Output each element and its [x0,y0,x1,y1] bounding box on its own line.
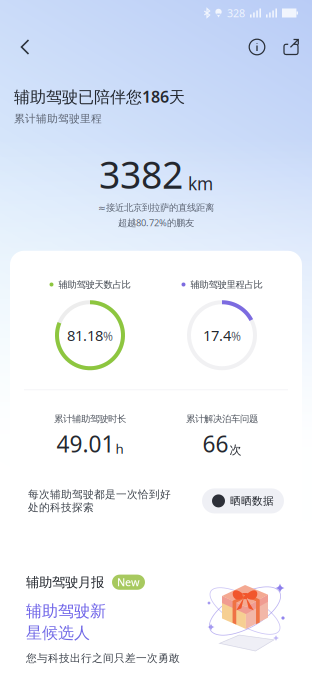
staticText: km [188,172,213,195]
staticText: 次 [229,443,241,457]
staticText: 累计辅助驾驶里程 [14,112,102,125]
staticText: 81.18 [67,325,103,345]
staticText: h [115,440,123,457]
staticText: 累计解决泊车问题 [186,413,258,425]
staticText: 17.4 [203,325,231,345]
button[interactable]: Back [5,28,47,66]
staticText: 66 [202,429,228,459]
staticText: 辅助驾驶新 [26,601,106,621]
staticText: 每次辅助驾驶都是一次恰到好处的科技探索 [28,488,171,514]
staticText: 您与科技出行之间只差一次勇敢 [26,652,180,665]
staticText: 辅助驾驶里程占比 [190,279,262,290]
staticText: 辅助驾驶月报 [26,574,104,590]
staticText: 3382 [99,149,183,199]
button[interactable]: Info [239,29,275,65]
staticText: 累计辅助驾驶时长 [54,413,126,425]
staticText: % [231,328,241,344]
staticText: 星候选人 [26,623,90,643]
staticText: 328 [227,6,245,20]
staticText: 49.01 [56,429,114,459]
button[interactable]: Share [275,29,307,64]
staticText: % [103,328,113,344]
staticText: 辅助驾驶天数占比 [58,279,130,290]
staticText: New [117,575,140,589]
staticText: 辅助驾驶已陪伴您186天 [14,86,185,107]
staticText: 超越80.72%的鹏友 [118,216,194,229]
button[interactable]: 晒晒数据 [202,488,284,513]
staticText: ≈接近北京到拉萨的直线距离 [98,202,214,213]
staticText: 晒晒数据 [230,494,274,507]
